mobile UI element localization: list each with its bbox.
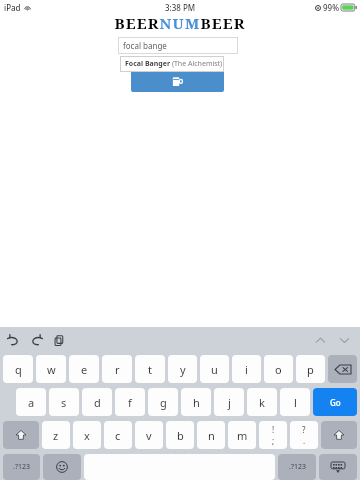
staticText: ; [272, 435, 275, 446]
staticText: a [28, 395, 35, 410]
button[interactable]: s [49, 388, 79, 416]
button[interactable]: j [214, 388, 244, 416]
button[interactable]: Undo [5, 332, 21, 348]
button[interactable]: Emoji [43, 454, 81, 480]
button[interactable]: z [42, 421, 70, 449]
button[interactable]: Shift [321, 421, 357, 449]
staticText: f [128, 395, 132, 410]
staticText: g [160, 395, 167, 410]
staticText: q [15, 362, 22, 377]
staticText: Focal Banger (The Alchemist) [125, 59, 223, 69]
button[interactable]: o [264, 355, 293, 383]
staticText: t [148, 362, 152, 377]
button[interactable]: Next field [336, 332, 352, 348]
button[interactable]: x [73, 421, 101, 449]
staticText: e [81, 362, 88, 377]
button[interactable]: a [16, 388, 46, 416]
button[interactable]: n [197, 421, 225, 449]
button[interactable]: e [69, 355, 99, 383]
staticText: focal bange [123, 40, 167, 51]
button[interactable]: v [135, 421, 163, 449]
staticText: . [303, 435, 306, 446]
staticText: .?123 [289, 462, 306, 472]
staticText: j [228, 395, 231, 410]
button[interactable]: i [232, 355, 261, 383]
button[interactable]: Search beer [131, 70, 224, 92]
staticText: m [237, 428, 248, 443]
button[interactable]: m [228, 421, 256, 449]
button[interactable]: .?123 [278, 454, 316, 480]
staticText: z [53, 428, 59, 443]
staticText: iPad [4, 2, 21, 13]
button[interactable]: h [181, 388, 211, 416]
button[interactable]: Hide keyboard [319, 454, 357, 480]
button[interactable]: Redo [28, 332, 44, 348]
button[interactable]: g [148, 388, 178, 416]
staticText: l [294, 395, 297, 410]
staticText: BEERNUMBEER [114, 13, 246, 33]
staticText: y [180, 362, 186, 377]
staticText: ! [272, 424, 275, 435]
button[interactable]: w [36, 355, 66, 383]
button[interactable]: c [104, 421, 132, 449]
staticText: Go [330, 397, 341, 408]
button[interactable]: l [280, 388, 310, 416]
staticText: n [208, 428, 215, 443]
button[interactable]: Focal Banger (The Alchemist) [120, 56, 224, 72]
button[interactable]: f [115, 388, 145, 416]
staticText: u [211, 362, 218, 377]
button[interactable]: p [296, 355, 325, 383]
button[interactable]: b [166, 421, 194, 449]
button[interactable]: u [200, 355, 229, 383]
staticText: h [193, 395, 200, 410]
button[interactable]: Previous field [312, 332, 328, 348]
button[interactable]: .?123 [3, 454, 40, 480]
staticText: o [275, 362, 282, 377]
staticText: s [61, 395, 67, 410]
button[interactable]: Backspace [328, 355, 357, 383]
staticText: k [259, 395, 265, 410]
button[interactable]: ! [259, 421, 287, 449]
button[interactable]: ? [290, 421, 318, 449]
button[interactable]: d [82, 388, 112, 416]
staticText: i [245, 362, 248, 377]
staticText: ? [302, 424, 306, 435]
staticText: c [115, 428, 121, 443]
button[interactable]: t [135, 355, 165, 383]
button[interactable]: focal bange [118, 37, 238, 54]
staticText: x [84, 428, 90, 443]
button[interactable]: q [3, 355, 33, 383]
button[interactable]: Shift [3, 421, 39, 449]
button[interactable]: Copy [51, 332, 67, 348]
button[interactable]: k [247, 388, 277, 416]
staticText: .?123 [13, 462, 30, 472]
staticText: b [177, 428, 184, 443]
staticText: 3:38 PM [165, 2, 196, 13]
staticText: p [307, 362, 314, 377]
button[interactable]: r [102, 355, 132, 383]
staticText: v [146, 428, 152, 443]
staticText: 99% [323, 2, 339, 13]
staticText: d [94, 395, 101, 410]
button[interactable]: Go [313, 388, 357, 416]
staticText: w [47, 362, 56, 377]
staticText: r [115, 362, 120, 377]
button[interactable]: y [168, 355, 197, 383]
